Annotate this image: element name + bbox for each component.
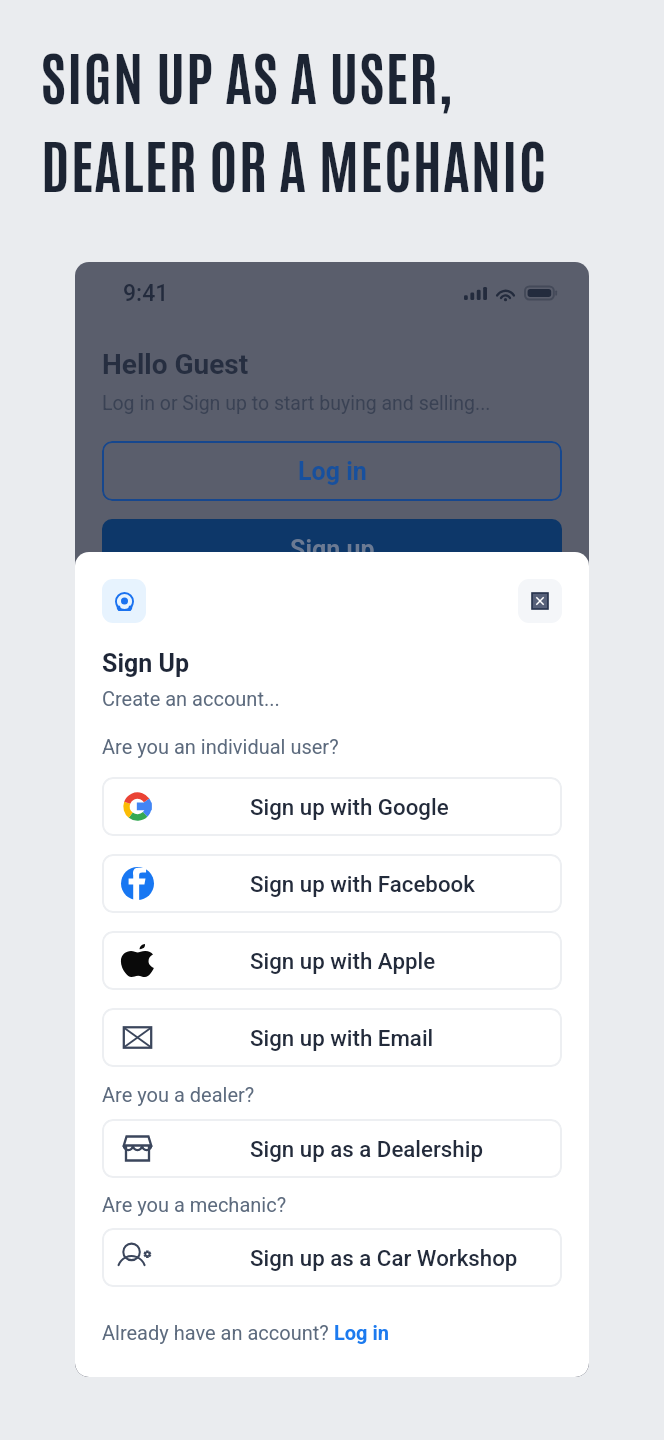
staticText: Hello Guest bbox=[102, 348, 249, 381]
staticText: Are you a dealer? bbox=[102, 1083, 255, 1106]
button[interactable]: Sign up bbox=[102, 519, 562, 579]
button[interactable]: Sign up as a Car Workshop bbox=[102, 1228, 562, 1287]
staticText: Sign up as a Car Workshop bbox=[250, 1245, 518, 1271]
button[interactable]: Close bbox=[518, 579, 562, 623]
staticText: Log in or Sign up to start buying and se… bbox=[102, 392, 491, 415]
button[interactable]: Log in bbox=[334, 1321, 390, 1344]
button[interactable]: Sign up with Apple bbox=[102, 931, 562, 990]
staticText: Sign up as a Dealership bbox=[250, 1136, 483, 1162]
other: Account bbox=[102, 579, 146, 623]
button[interactable]: Sign up with Google bbox=[102, 777, 562, 836]
staticText: Are you a mechanic? bbox=[102, 1193, 287, 1216]
button[interactable]: Sign up with Facebook bbox=[102, 854, 562, 913]
staticText: Are you an individual user? bbox=[102, 735, 339, 758]
staticText: 9:41 bbox=[123, 280, 169, 307]
staticText: Create an account... bbox=[102, 687, 280, 710]
staticText: SIGN UP AS A USER, DEALER OR A MECHANIC bbox=[41, 37, 548, 200]
staticText: Sign up with Email bbox=[250, 1025, 434, 1051]
staticText: Already have an account? bbox=[102, 1321, 334, 1344]
staticText: Sign up bbox=[290, 535, 375, 564]
staticText: Sign Up bbox=[102, 649, 190, 678]
button[interactable]: Log in bbox=[102, 441, 562, 501]
button[interactable]: Sign up with Email bbox=[102, 1008, 562, 1067]
staticText: Log in bbox=[298, 457, 367, 486]
staticText: Log in bbox=[334, 1321, 390, 1344]
staticText: Sign up with Facebook bbox=[250, 871, 475, 897]
staticText: Sign up with Apple bbox=[250, 948, 436, 974]
button[interactable]: Sign up as a Dealership bbox=[102, 1119, 562, 1178]
staticText: Sign up with Google bbox=[250, 794, 449, 820]
